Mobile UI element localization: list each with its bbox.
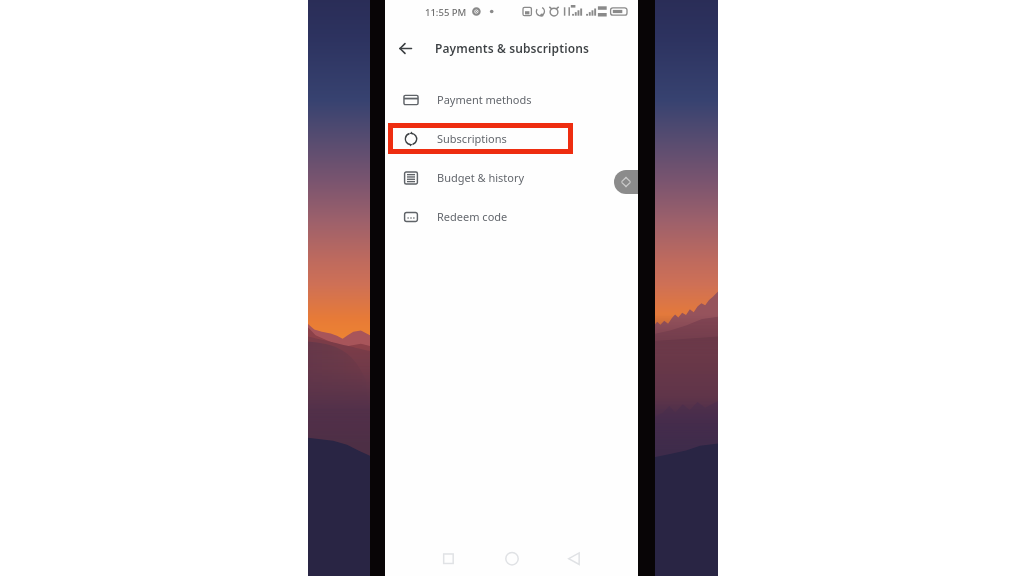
staticText: Redeem code: [437, 209, 508, 224]
staticText: Payments & subscriptions: [435, 40, 589, 56]
staticText: Payment methods: [437, 92, 532, 107]
staticText: 11:55 PM: [425, 6, 467, 19]
staticText: Budget & history: [437, 170, 525, 185]
button[interactable]: Redeem code: [385, 197, 638, 236]
button[interactable]: Payment methods: [385, 80, 638, 119]
button[interactable]: Budget & history: [385, 158, 638, 197]
button[interactable]: Scroll handle: [614, 170, 638, 194]
button[interactable]: Subscriptions: [385, 119, 638, 158]
staticText: Subscriptions: [437, 131, 507, 146]
button[interactable]: Back: [392, 35, 418, 61]
